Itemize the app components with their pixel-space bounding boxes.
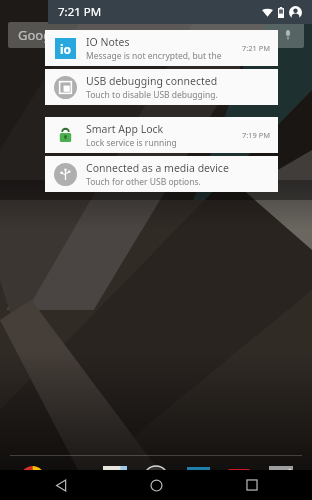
staticText: 7:21 PM	[58, 4, 102, 20]
staticText: IO Notes	[86, 35, 130, 49]
button[interactable]: Camera	[265, 462, 297, 494]
staticText: Smart App Lock	[86, 122, 164, 136]
button[interactable]: Home	[121, 470, 191, 500]
button[interactable]: Smart App Lock	[45, 117, 278, 153]
button[interactable]: Apps	[140, 462, 172, 494]
staticText: 7:19 PM	[242, 130, 271, 140]
button[interactable]: Connected as a media device	[45, 156, 278, 192]
staticText: Google	[18, 26, 62, 44]
button[interactable]: Google search	[8, 22, 304, 48]
staticText: Touch for other USB options.	[86, 176, 201, 188]
staticText: 7:21 PM	[242, 43, 271, 53]
button[interactable]: io	[45, 30, 278, 66]
button[interactable]: Chrome	[16, 462, 48, 494]
staticText: io	[60, 41, 72, 57]
staticText: Touch to disable USB debugging.	[86, 89, 218, 101]
button[interactable]: IO Notes	[182, 462, 214, 494]
staticText: USB debugging connected	[86, 74, 218, 88]
staticText: Message is not encrypted, but the databa…	[86, 50, 242, 62]
button[interactable]: Recents	[217, 470, 287, 500]
button[interactable]: YouTube	[223, 462, 255, 494]
staticText: Connected as a media device	[86, 161, 229, 175]
button[interactable]: USB debugging connected	[45, 69, 278, 105]
staticText: Lock service is running	[86, 137, 177, 149]
button[interactable]: Maps	[99, 462, 131, 494]
button[interactable]: Back	[26, 470, 96, 500]
button[interactable]: Gmail	[57, 462, 89, 494]
